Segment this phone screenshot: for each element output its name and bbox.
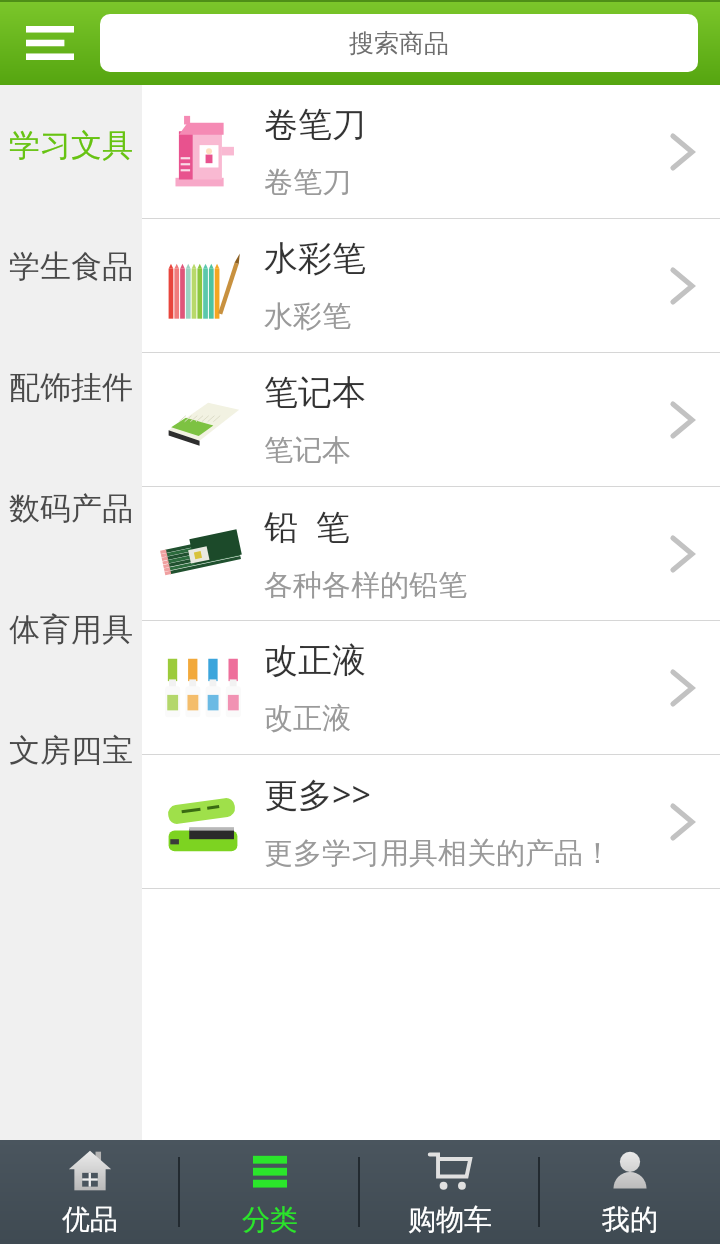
button[interactable]: 搜索商品 (100, 14, 698, 72)
staticText: 搜索商品 (349, 28, 449, 59)
staticText: 各种各样的铅笔 (264, 567, 467, 604)
button[interactable]: 配饰挂件 (0, 327, 142, 448)
staticText: 更多>> (264, 771, 371, 817)
staticText: 优品 (62, 1202, 118, 1237)
button[interactable]: 分类 (180, 1140, 360, 1244)
staticText: 水彩笔 (264, 298, 351, 335)
button[interactable]: 学生食品 (0, 206, 142, 327)
staticText: 更多学习用具相关的产品！ (264, 835, 612, 872)
staticText: 笔记本 (264, 371, 366, 414)
button[interactable]: 卷笔刀 (142, 85, 720, 218)
staticText: 我的 (602, 1202, 658, 1237)
staticText: 改正液 (264, 639, 366, 682)
staticText: 文房四宝 (9, 731, 133, 770)
button[interactable]: 我的 (540, 1140, 720, 1244)
staticText: 购物车 (408, 1202, 492, 1237)
staticText: 配饰挂件 (9, 368, 133, 407)
staticText: 分类 (242, 1202, 298, 1237)
button[interactable]: Menu (14, 8, 86, 78)
staticText: 学生食品 (9, 247, 133, 286)
staticText: 铅 笔 (264, 503, 350, 549)
button[interactable]: 数码产品 (0, 448, 142, 569)
staticText: 卷笔刀 (264, 103, 366, 146)
button[interactable]: 优品 (0, 1140, 180, 1244)
button[interactable]: 铅 笔 (142, 487, 720, 620)
button[interactable]: 学习文具 (0, 85, 142, 206)
staticText: 卷笔刀 (264, 164, 351, 201)
button[interactable]: 购物车 (360, 1140, 540, 1244)
staticText: 水彩笔 (264, 237, 366, 280)
button[interactable]: 体育用具 (0, 569, 142, 690)
staticText: 学习文具 (9, 126, 133, 165)
staticText: 体育用具 (9, 610, 133, 649)
button[interactable]: 更多>> (142, 755, 720, 888)
staticText: 数码产品 (9, 489, 133, 528)
button[interactable]: 笔记本 (142, 353, 720, 486)
button[interactable]: 改正液 (142, 621, 720, 754)
button[interactable]: 文房四宝 (0, 690, 142, 811)
staticText: 笔记本 (264, 432, 351, 469)
button[interactable]: 水彩笔 (142, 219, 720, 352)
staticText: 改正液 (264, 700, 351, 737)
